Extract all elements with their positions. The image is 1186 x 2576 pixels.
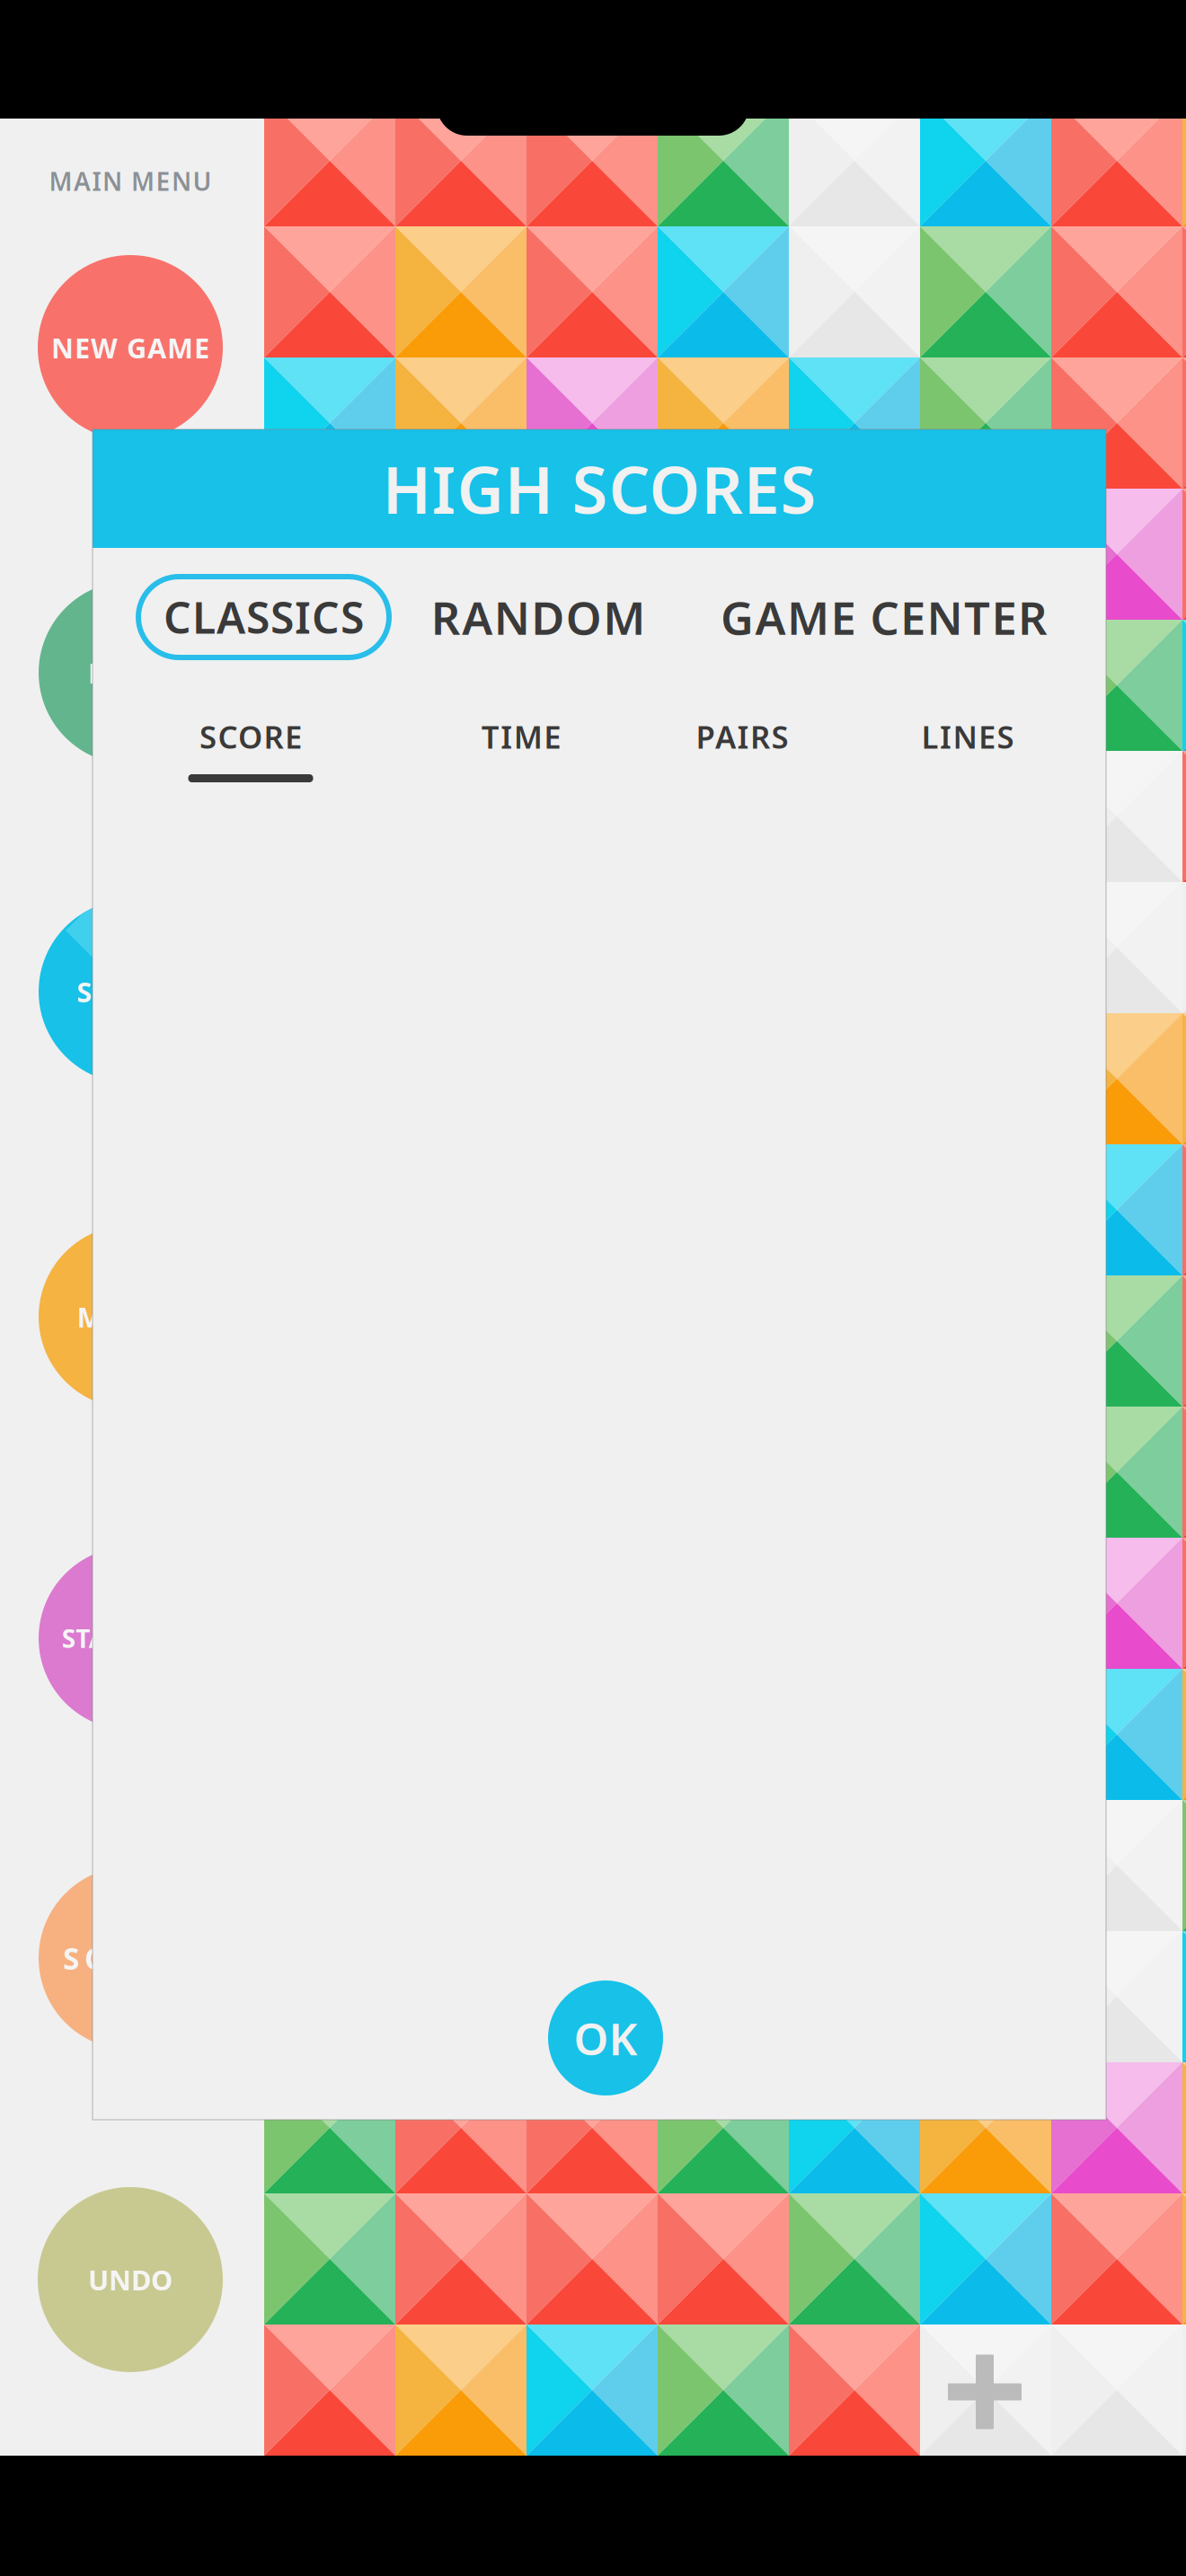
button[interactable]: MUSIC	[39, 1225, 222, 1408]
staticText: UNDO	[88, 2261, 173, 2298]
staticText: TIME	[481, 716, 561, 757]
staticText: HIGH SCORES	[382, 446, 816, 532]
button[interactable]: SCORE	[134, 721, 367, 788]
button[interactable]: SOCIAL	[39, 1866, 222, 2050]
staticText: MUSIC	[77, 1298, 184, 1335]
staticText: SOCIAL	[63, 1938, 198, 1978]
staticText: GAME CENTER	[721, 587, 1048, 647]
button[interactable]: RANDOM	[430, 577, 646, 657]
button[interactable]: CLASSICS	[138, 577, 389, 657]
staticText: NEW GAME	[51, 329, 209, 366]
button[interactable]: OK	[548, 1981, 663, 2095]
staticText: LINES	[921, 716, 1014, 757]
staticText: STATISTICS	[62, 1622, 199, 1655]
staticText: PAIRS	[696, 716, 788, 757]
button[interactable]: PAIRS	[625, 721, 859, 788]
button[interactable]: LINES	[851, 721, 1084, 788]
staticText: SCORE	[199, 716, 302, 757]
staticText: OK	[574, 2009, 637, 2067]
button[interactable]: HELP	[39, 581, 222, 764]
staticText: MAIN MENU	[49, 164, 212, 198]
button[interactable]: UNDO	[38, 2187, 223, 2372]
button[interactable]: TIME	[404, 721, 638, 788]
staticText: CLASSICS	[164, 588, 364, 646]
staticText: RANDOM	[431, 587, 645, 647]
button[interactable]: SOUND	[39, 900, 222, 1083]
staticText: HELP	[88, 654, 173, 691]
button[interactable]: STATISTICS	[39, 1547, 222, 1730]
button[interactable]: NEW GAME	[38, 255, 223, 440]
staticText: SOUND	[77, 973, 184, 1010]
button[interactable]: GAME CENTER	[713, 577, 1055, 657]
